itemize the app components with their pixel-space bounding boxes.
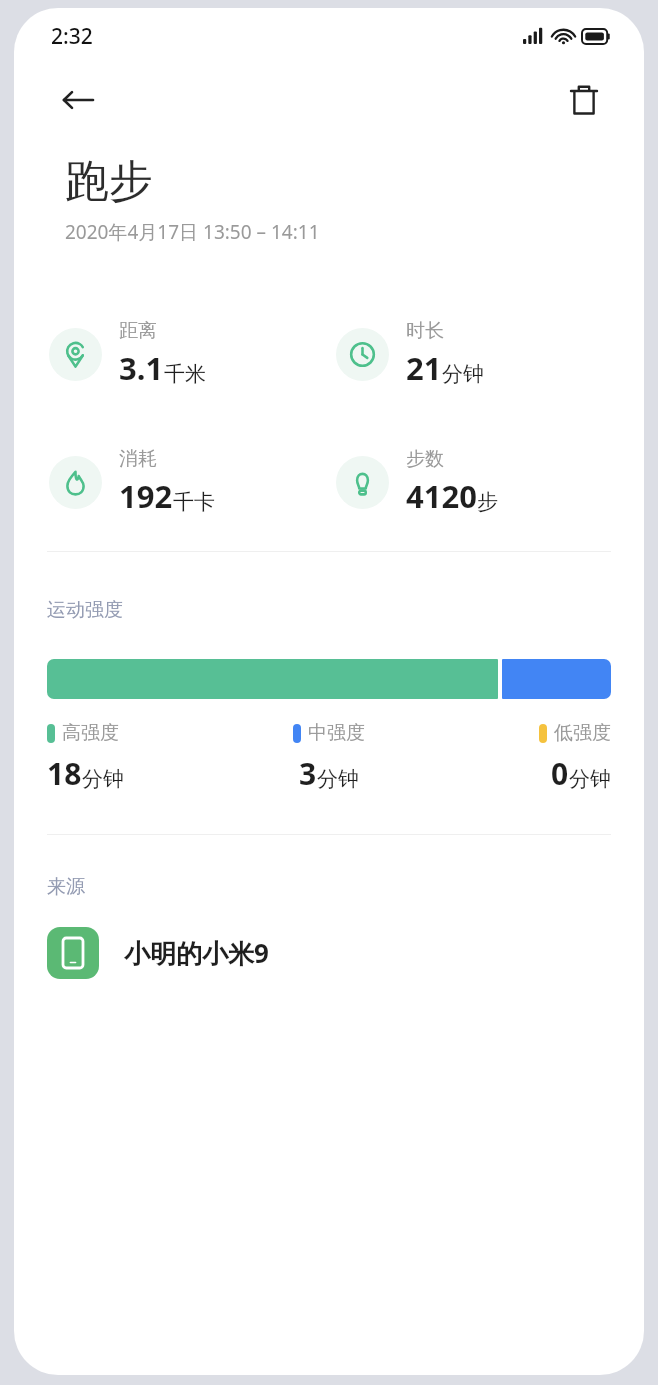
button[interactable]: 中强度 bbox=[235, 721, 423, 794]
button[interactable]: 步数 bbox=[336, 447, 624, 517]
staticText: 千米 bbox=[164, 361, 206, 387]
staticText: 来源 bbox=[47, 875, 85, 899]
staticText: 0 bbox=[551, 753, 569, 794]
staticText: 分钟 bbox=[569, 766, 611, 792]
staticText: 步数 bbox=[406, 447, 444, 471]
staticText: 运动强度 bbox=[47, 598, 123, 622]
staticText: 小明的小米9 bbox=[124, 935, 269, 971]
staticText: 3 bbox=[299, 753, 317, 794]
staticText: 分钟 bbox=[317, 766, 359, 792]
staticText: 2020年4月17日 13:50 – 14:11 bbox=[65, 219, 320, 245]
staticText: 低强度 bbox=[554, 721, 611, 745]
button[interactable]: Delete bbox=[560, 76, 608, 124]
staticText: 21 bbox=[406, 347, 442, 389]
staticText: 192 bbox=[119, 475, 173, 517]
staticText: 2:32 bbox=[51, 22, 93, 51]
staticText: 高强度 bbox=[62, 721, 119, 745]
staticText: 距离 bbox=[119, 319, 157, 343]
staticText: 中强度 bbox=[308, 721, 365, 745]
staticText: 步 bbox=[477, 489, 498, 515]
staticText: 消耗 bbox=[119, 447, 157, 471]
staticText: 3.1 bbox=[119, 347, 164, 389]
button[interactable]: 时长 bbox=[336, 319, 624, 389]
button[interactable]: Back bbox=[54, 76, 102, 124]
staticText: 千卡 bbox=[173, 489, 215, 515]
button[interactable]: 小明的小米9 bbox=[47, 927, 269, 979]
button[interactable]: 消耗 bbox=[49, 447, 336, 517]
button[interactable]: 距离 bbox=[49, 319, 336, 389]
staticText: 时长 bbox=[406, 319, 444, 343]
staticText: 4120 bbox=[406, 475, 477, 517]
button[interactable]: 低强度 bbox=[423, 721, 611, 794]
staticText: 18 bbox=[47, 753, 82, 794]
staticText: 分钟 bbox=[442, 361, 484, 387]
staticText: 跑步 bbox=[65, 154, 153, 209]
staticText: 分钟 bbox=[82, 766, 124, 792]
button[interactable]: 高强度 bbox=[47, 721, 235, 794]
